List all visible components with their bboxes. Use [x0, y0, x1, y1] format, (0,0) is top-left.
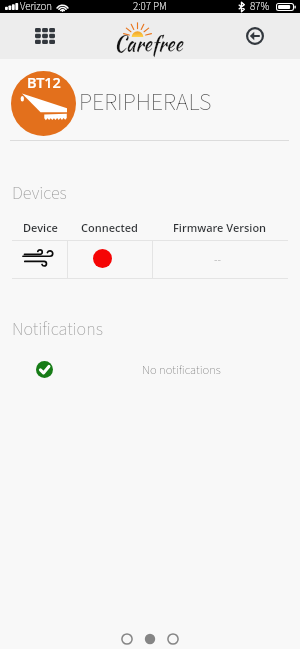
- staticText: Carefree: [114, 29, 183, 58]
- staticText: Firmware Version: [173, 220, 267, 235]
- button[interactable]: Back: [243, 24, 267, 48]
- button[interactable]: Page: [167, 633, 179, 645]
- staticText: Devices: [12, 181, 67, 207]
- staticText: Device: [23, 220, 58, 235]
- staticText: PERIPHERALS: [79, 85, 212, 119]
- staticText: Notifications: [12, 317, 103, 343]
- staticText: 87%: [250, 0, 270, 12]
- button[interactable]: Menu: [31, 24, 58, 47]
- staticText: No notifications: [142, 361, 221, 379]
- staticText: Connected: [81, 220, 138, 235]
- staticText: Verizon: [20, 0, 53, 12]
- button[interactable]: Page: [121, 633, 133, 645]
- staticText: BT12: [27, 73, 61, 93]
- staticText: --: [214, 252, 222, 269]
- staticText: 2:07 PM: [133, 0, 167, 12]
- button[interactable]: Page: [144, 633, 156, 645]
